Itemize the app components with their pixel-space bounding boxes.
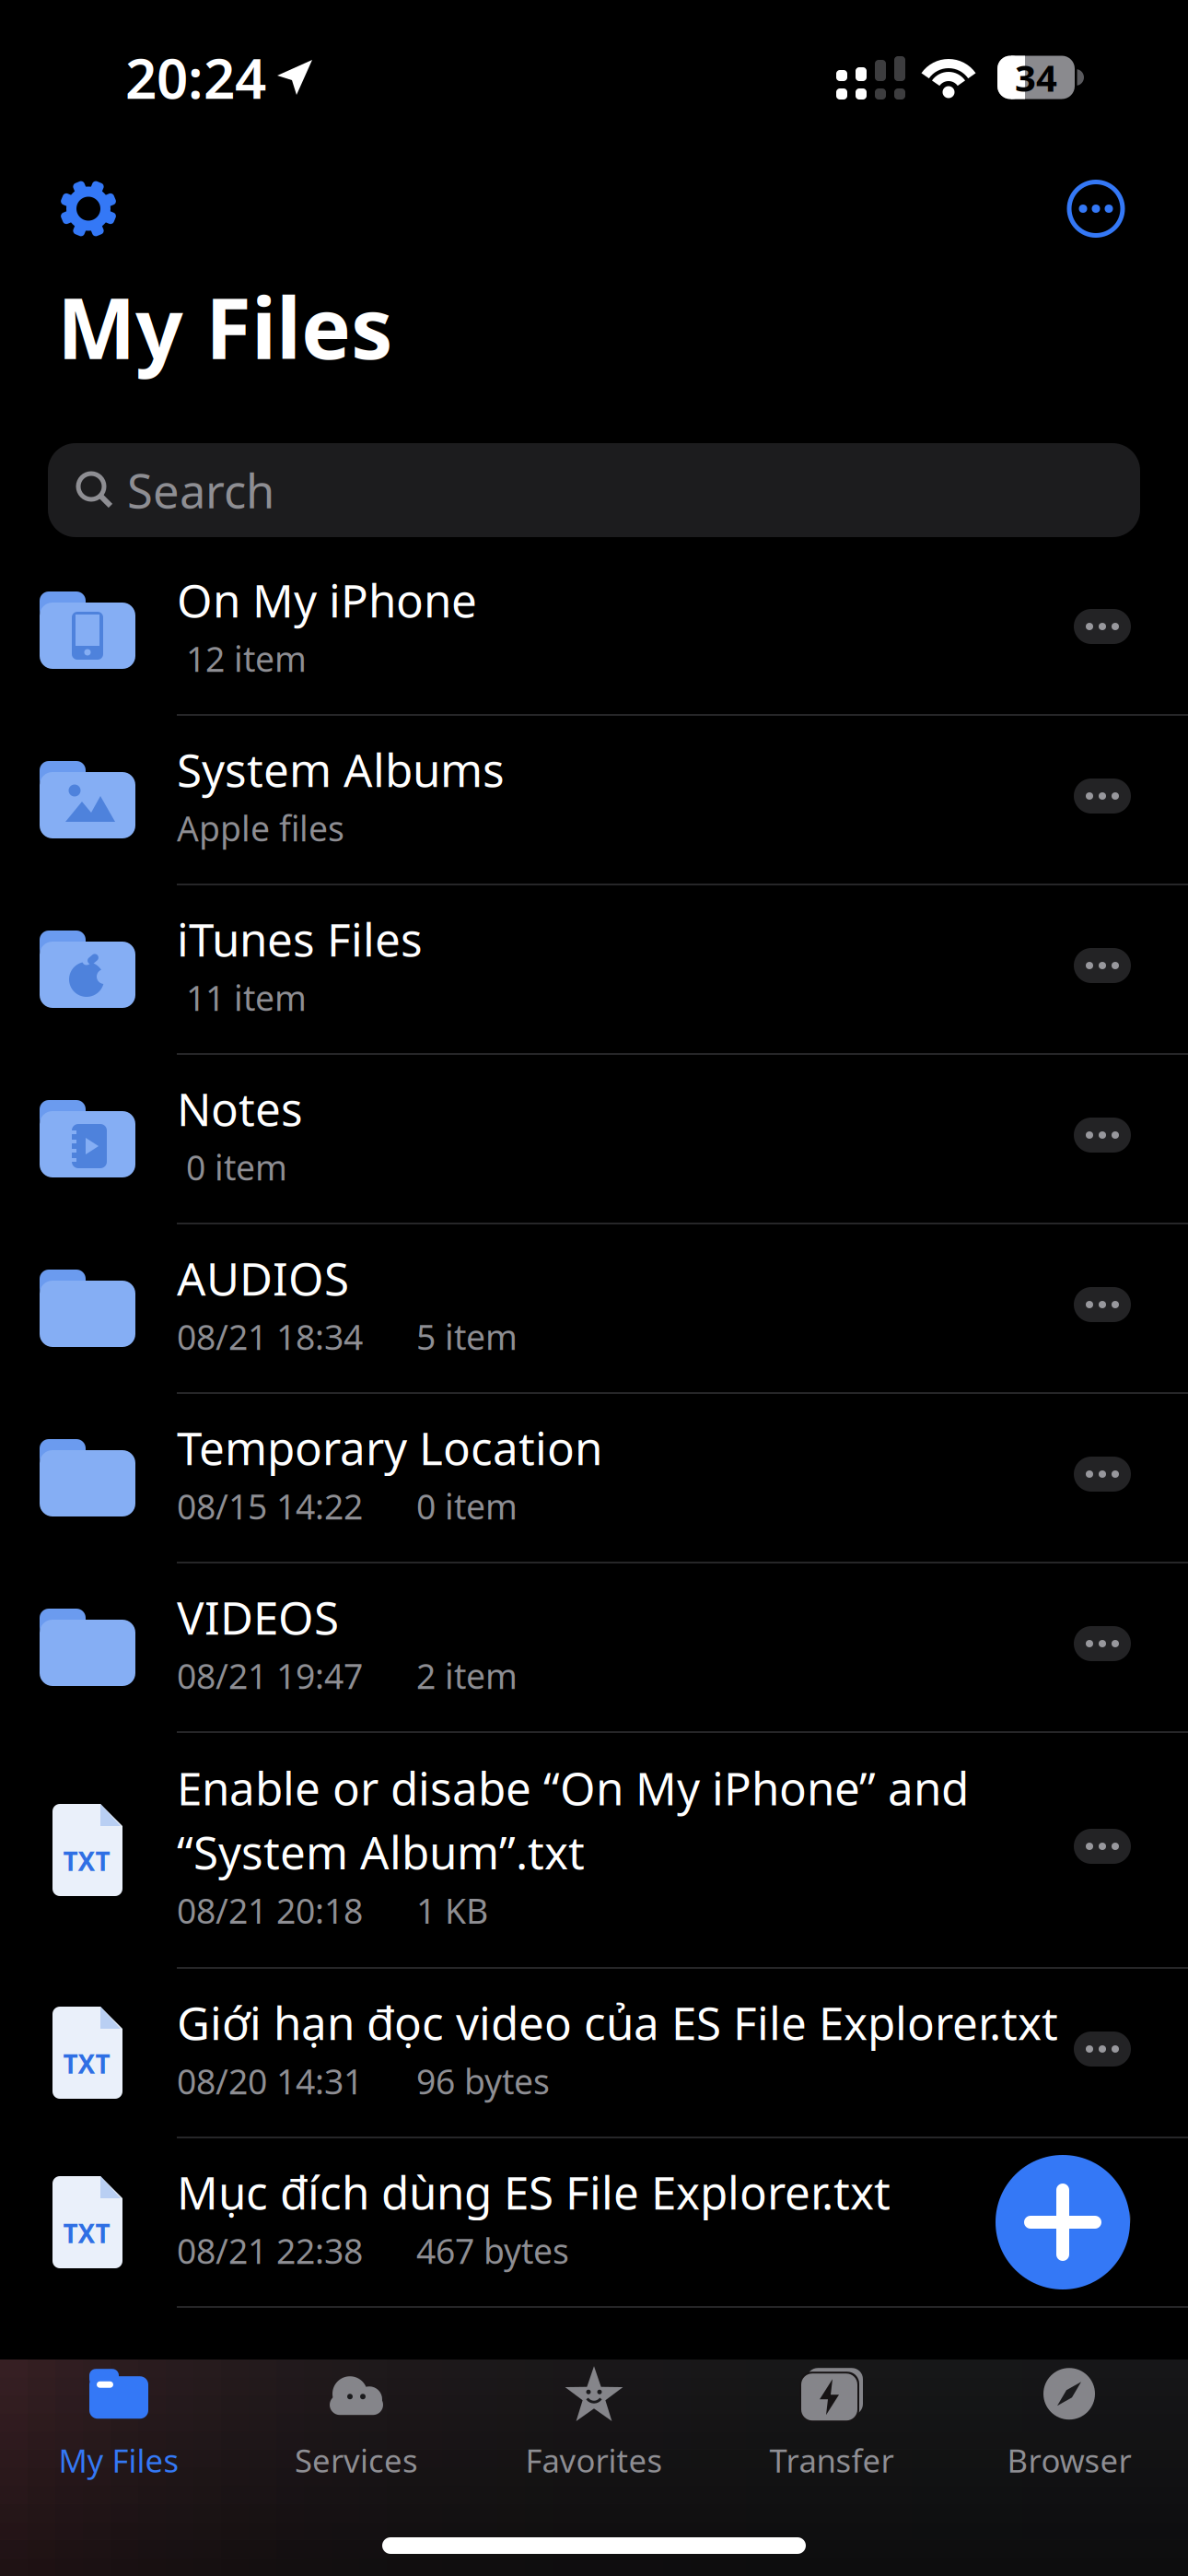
button[interactable]: More [1067,180,1124,237]
button[interactable]: More [1074,1626,1131,1661]
staticText: 467 bytes [416,2228,569,2273]
button[interactable]: More [1074,1118,1131,1153]
staticText: My Files [57,271,393,382]
staticText: AUDIOS [177,1248,349,1308]
staticText: Browser [1007,2439,1131,2481]
staticText: Notes [177,1078,303,1139]
staticText: Transfer [769,2439,894,2481]
staticText: 20:24 [125,41,266,114]
staticText: VIDEOS [177,1587,339,1647]
staticText: TXT [63,1844,110,1878]
button[interactable]: Temporary Location [0,1417,1074,1538]
staticText: 2 item [416,1653,518,1699]
button[interactable]: Notes [0,1078,1074,1199]
staticText: 5 item [416,1314,518,1359]
staticText: 08/15 14:22 [177,1483,363,1529]
staticText: 34 [1015,53,1057,102]
staticText: 0 item [186,1144,287,1190]
button[interactable]: More [1074,2201,1131,2236]
staticText: Search [127,459,274,521]
button[interactable]: On My iPhone [0,570,1074,691]
staticText: Giới hạn đọc video của ES File Explorer.… [177,1992,1058,2053]
button[interactable]: iTunes Files [0,909,1074,1030]
staticText: Favorites [525,2439,663,2481]
staticText: Services [295,2439,418,2481]
button[interactable]: More [1074,779,1131,814]
button[interactable]: More [1074,1829,1131,1864]
staticText: 0 item [416,1483,518,1529]
button[interactable]: Favorites [475,2346,713,2481]
button[interactable]: System Albums [0,739,1074,860]
button[interactable]: More [1074,2032,1131,2067]
button[interactable]: My Files [0,2346,238,2481]
button[interactable]: Browser [950,2346,1188,2481]
staticText: 08/21 18:34 [177,1314,363,1359]
button[interactable]: More [1074,948,1131,983]
staticText: My Files [58,2439,179,2481]
staticText: 08/21 19:47 [177,1653,363,1699]
staticText: Mục đích dùng ES File Explorer.txt [177,2162,891,2222]
staticText: iTunes Files [177,909,423,969]
staticText: System Albums [177,739,505,800]
button[interactable]: Services [238,2346,475,2481]
button[interactable]: TXT [0,2162,1074,2283]
button[interactable]: More [1074,609,1131,644]
button[interactable]: VIDEOS [0,1587,1074,1708]
button[interactable]: TXT [0,1992,1074,2113]
staticText: 96 bytes [416,2058,550,2104]
staticText: 08/20 14:31 [177,2058,363,2104]
staticText: Enable or disabe “On My iPhone” and [177,1758,969,1818]
button[interactable]: Search [48,443,1140,537]
staticText: 12 item [186,636,307,681]
staticText: TXT [63,2216,110,2250]
staticText: On My iPhone [177,570,477,630]
staticText: 08/21 22:38 [177,2228,363,2273]
staticText: Temporary Location [177,1417,602,1478]
button[interactable]: Transfer [713,2346,950,2481]
button[interactable]: More [1074,1287,1131,1322]
staticText: TXT [63,2047,110,2081]
staticText: Apple files [177,805,344,851]
staticText: 08/21 20:18 [177,1888,363,1933]
button[interactable]: TXT [0,1758,1074,1942]
button[interactable]: AUDIOS [0,1248,1074,1369]
staticText: 1 KB [416,1888,488,1933]
staticText: “System Album”.txt [177,1822,585,1882]
staticText: 11 item [186,975,307,1020]
button[interactable]: Add [996,2155,1130,2289]
button[interactable]: More [1074,1457,1131,1492]
button[interactable]: Settings [60,180,117,237]
